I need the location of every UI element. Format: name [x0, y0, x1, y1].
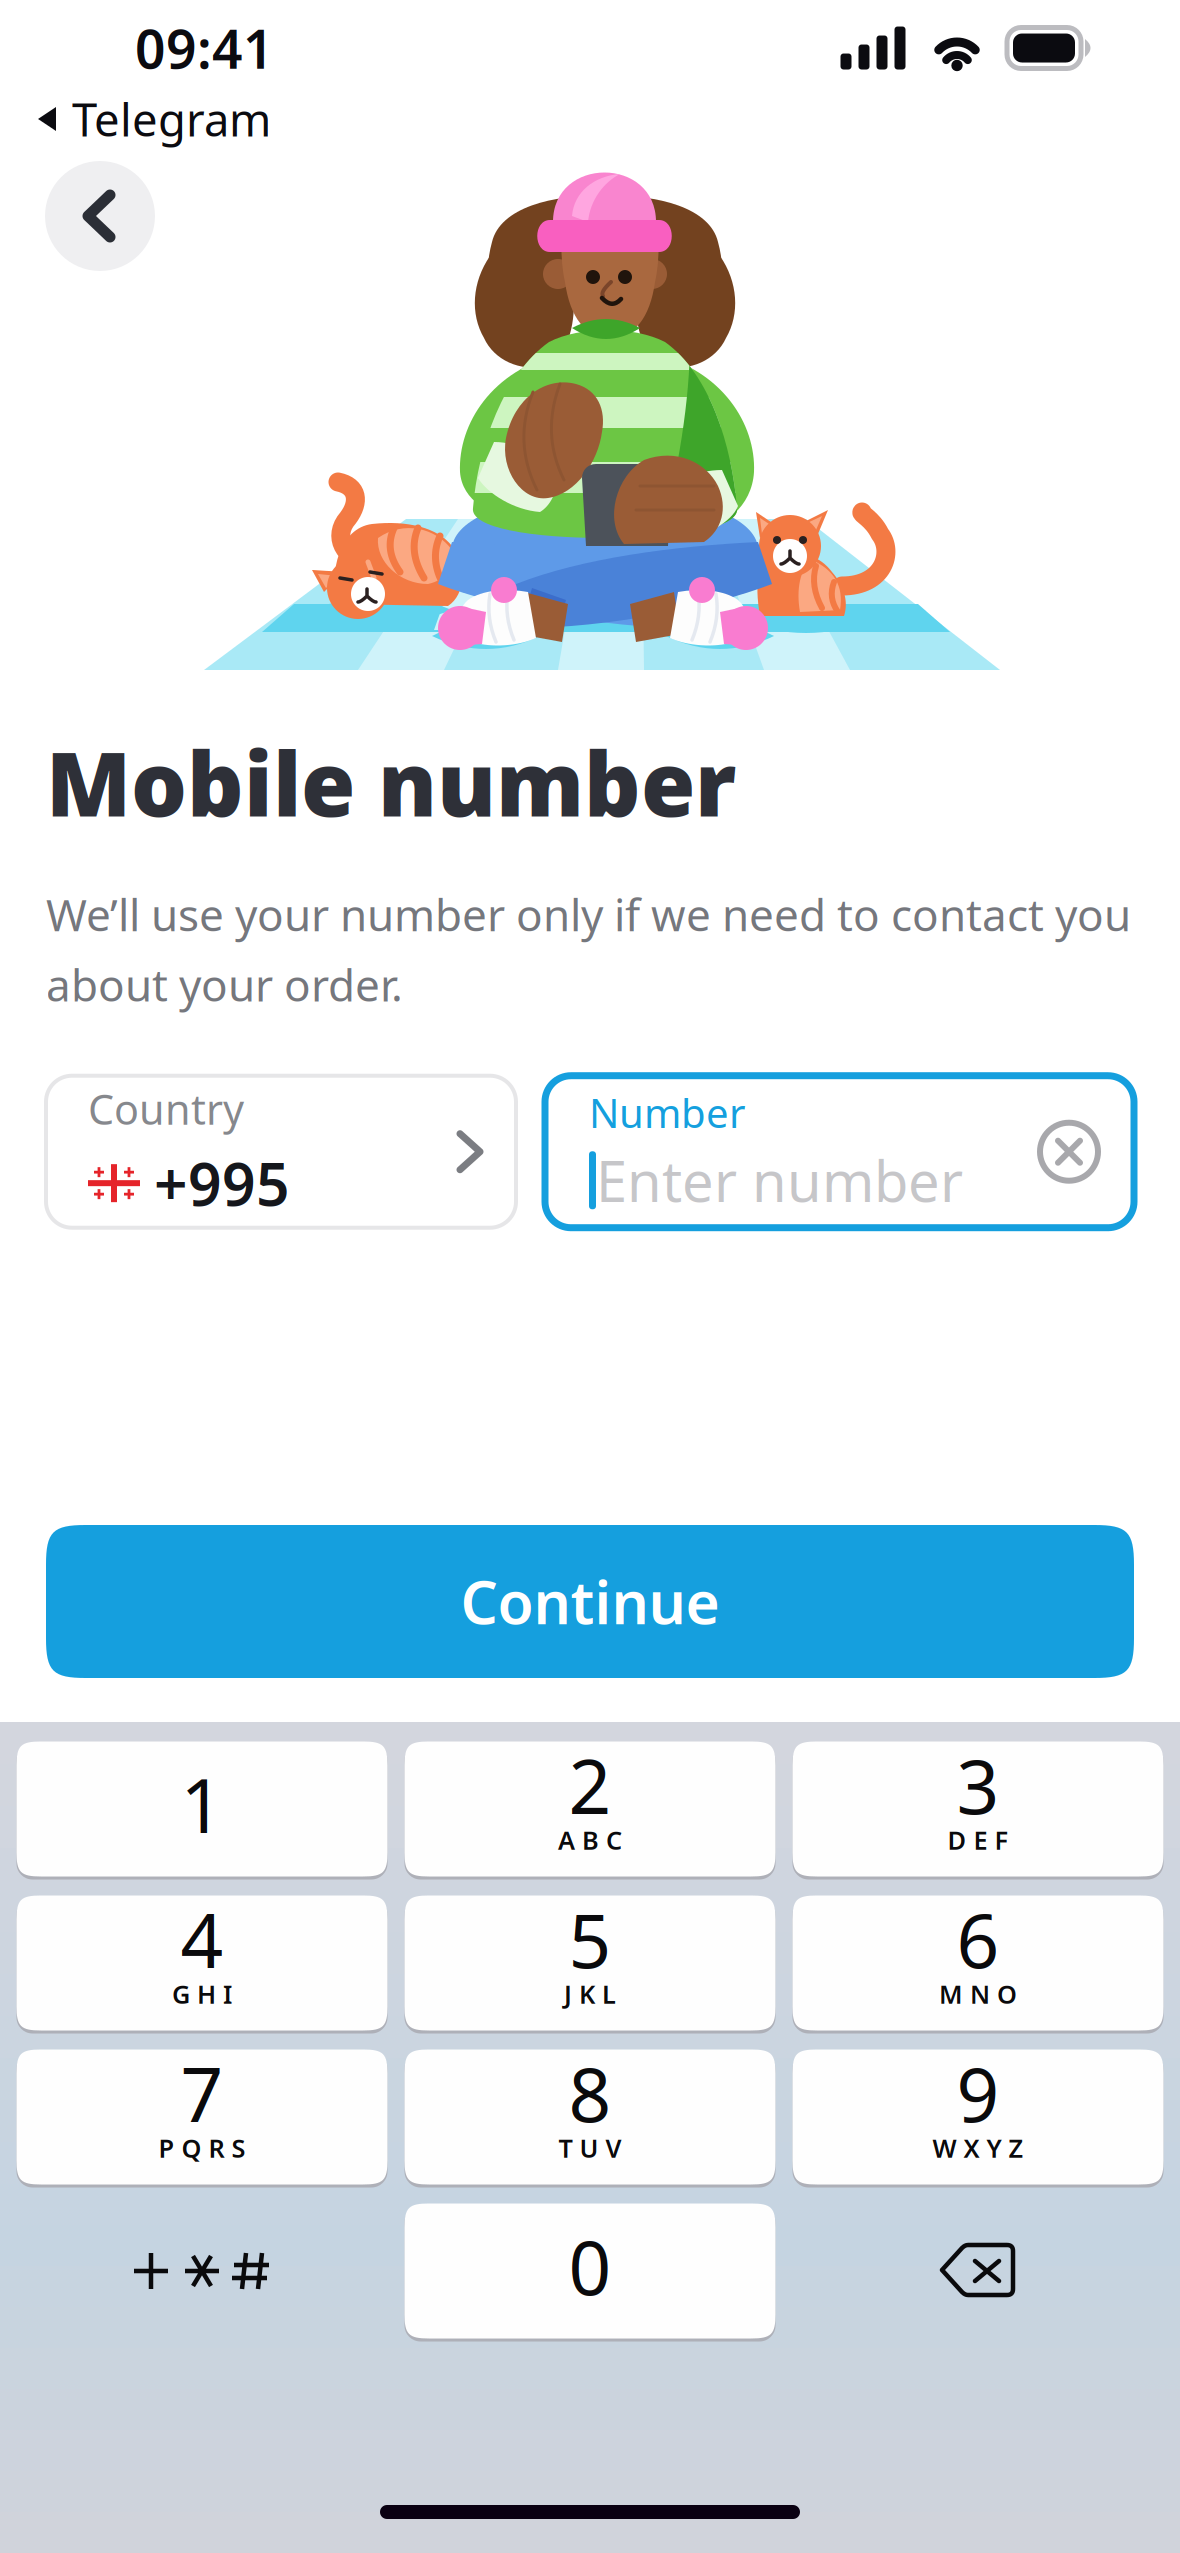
staticText: G H I	[172, 1977, 232, 2011]
button[interactable]: 4	[16, 1894, 387, 2032]
button[interactable]: 2	[404, 1740, 775, 1878]
button[interactable]: Continue	[46, 1525, 1134, 1678]
staticText: Continue	[460, 1562, 719, 1640]
button[interactable]: Delete	[792, 2202, 1163, 2340]
staticText: 1	[180, 1754, 223, 1854]
button[interactable]: 8	[404, 2048, 775, 2186]
staticText: 0	[568, 2216, 611, 2316]
staticText: T U V	[558, 2131, 621, 2165]
staticText: 6	[956, 1889, 999, 1989]
staticText: Number	[589, 1086, 746, 1139]
staticText: J K L	[564, 1977, 616, 2011]
staticText: W X Y Z	[932, 2131, 1023, 2165]
staticText: +995	[154, 1144, 290, 1222]
button[interactable]: Symbols	[16, 2202, 387, 2340]
button[interactable]: 0	[404, 2202, 775, 2340]
staticText: D E F	[947, 1823, 1008, 1857]
button[interactable]: 1	[16, 1740, 387, 1878]
staticText: 7	[180, 2043, 223, 2143]
staticText: 3	[956, 1735, 999, 1835]
button[interactable]: Country	[46, 1076, 516, 1228]
staticText: 9	[956, 2043, 999, 2143]
staticText: Enter number	[596, 1143, 963, 1217]
button[interactable]: Number	[545, 1076, 1134, 1228]
staticText: about your order.	[46, 955, 403, 1014]
button[interactable]: 7	[16, 2048, 387, 2186]
button[interactable]: 3	[792, 1740, 1163, 1878]
button[interactable]: Back	[45, 161, 155, 271]
staticText: 2	[568, 1735, 611, 1835]
staticText: Country	[88, 1081, 244, 1136]
staticText: We’ll use your number only if we need to…	[46, 885, 1131, 943]
staticText: Mobile number	[46, 724, 736, 841]
staticText: 4	[180, 1889, 223, 1989]
staticText: 5	[568, 1889, 611, 1989]
staticText: 8	[568, 2043, 611, 2143]
staticText: A B C	[558, 1823, 622, 1857]
button[interactable]: 6	[792, 1894, 1163, 2032]
button[interactable]: 9	[792, 2048, 1163, 2186]
staticText: Telegram	[72, 89, 271, 149]
staticText: P Q R S	[158, 2131, 245, 2165]
button[interactable]: 5	[404, 1894, 775, 2032]
staticText: M N O	[939, 1977, 1017, 2011]
staticText: 09:41	[135, 13, 274, 83]
